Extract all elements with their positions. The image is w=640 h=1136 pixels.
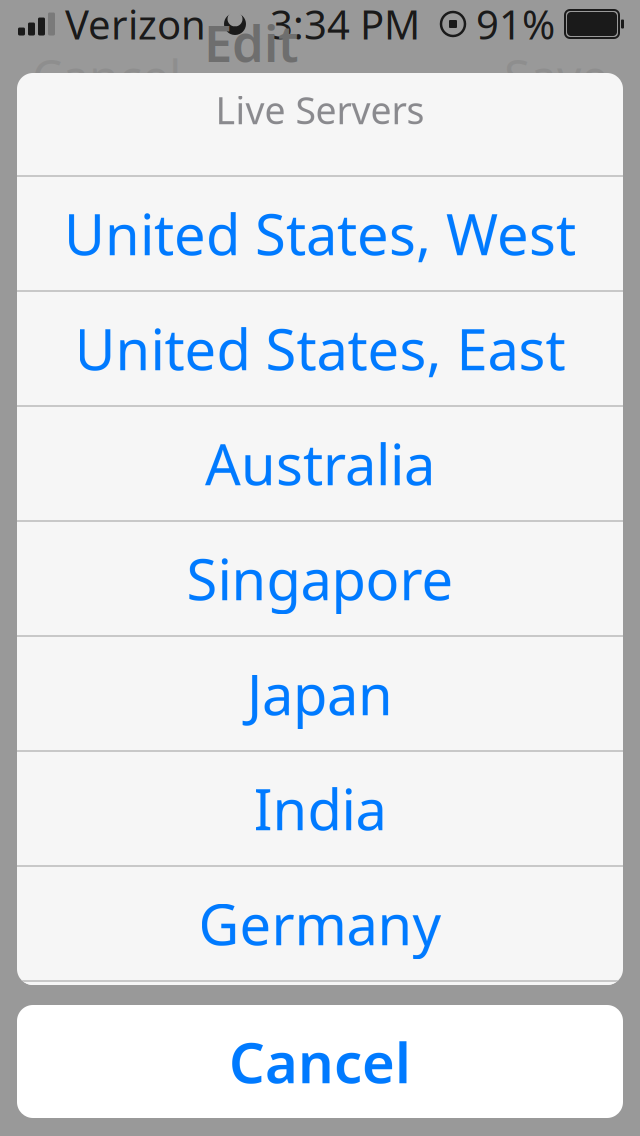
staticText: Verizon [65,0,206,50]
staticText: 3:34 PM [270,0,420,50]
staticText: Cancel [32,44,181,108]
button[interactable]: Germany [17,867,623,980]
staticText: 91% [476,0,555,50]
staticText: Edit Channel #2 [204,9,481,143]
button[interactable]: Cancel [17,1005,623,1118]
staticText: United States, West [64,196,576,271]
staticText: Australia [205,426,435,501]
staticText: United States, East [74,311,565,386]
button[interactable]: Japan [17,637,623,750]
button[interactable]: India [17,752,623,865]
staticText: Save [504,44,608,108]
button[interactable]: United States, West [17,177,623,290]
staticText: Japan [247,656,393,731]
button[interactable]: Singapore [17,522,623,635]
staticText: India [253,771,386,846]
button[interactable]: Australia [17,407,623,520]
staticText: Cancel [229,1024,411,1099]
staticText: Germany [198,886,441,961]
button[interactable]: United States, East [17,292,623,405]
staticText: Live Servers [215,85,424,135]
staticText: Singapore [186,541,453,616]
